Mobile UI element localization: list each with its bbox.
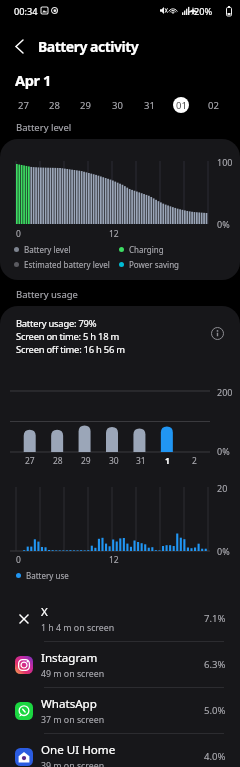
staticText: 20 — [217, 482, 228, 494]
staticText: Battery level — [16, 121, 72, 134]
button[interactable]: X — [0, 596, 240, 642]
staticText: 28 — [53, 455, 63, 467]
staticText: One UI Home — [41, 742, 116, 758]
staticText: 0% — [217, 218, 230, 230]
staticText: 0% — [217, 545, 230, 557]
staticText: 20% — [194, 5, 213, 18]
staticText: Apr 1 — [15, 70, 51, 90]
button[interactable]: 02 — [197, 95, 229, 115]
button[interactable]: One UI Home — [0, 734, 240, 767]
button[interactable]: Info — [208, 324, 226, 342]
button[interactable]: WhatsApp — [0, 688, 240, 734]
button[interactable]: Instagram — [0, 642, 240, 688]
staticText: Battery level — [24, 244, 71, 255]
staticText: 4.0% — [204, 750, 226, 763]
staticText: X — [41, 604, 48, 620]
button[interactable]: Back — [0, 30, 38, 62]
staticText: Battery use — [26, 570, 69, 581]
staticText: 29 — [80, 99, 91, 112]
staticText: 0 — [16, 554, 21, 566]
staticText: Battery usage — [16, 288, 78, 301]
staticText: Power saving — [129, 259, 180, 270]
staticText: 30 — [112, 99, 123, 112]
staticText: Estimated battery level — [24, 259, 110, 270]
button[interactable]: 27 — [7, 95, 38, 115]
staticText: Battery usage: 79% — [16, 317, 97, 330]
staticText: 01 — [176, 99, 187, 112]
staticText: 28 — [49, 99, 60, 112]
staticText: 31 — [136, 455, 146, 467]
staticText: 02 — [208, 99, 219, 112]
button[interactable]: 31 — [133, 95, 165, 115]
button[interactable]: 30 — [101, 95, 133, 115]
staticText: 200 — [217, 386, 233, 398]
staticText: 31 — [144, 99, 155, 112]
staticText: 1 h 4 m on screen — [41, 622, 115, 634]
staticText: 12 — [109, 228, 119, 240]
button[interactable]: 29 — [69, 95, 101, 115]
staticText: 27 — [25, 455, 35, 467]
staticText: Instagram — [41, 650, 98, 666]
button[interactable]: 28 — [38, 95, 69, 115]
staticText: Screen on time: 5 h 18 m — [16, 330, 119, 343]
staticText: 27 — [18, 99, 29, 112]
staticText: 37 m on screen — [41, 714, 105, 726]
staticText: 100 — [217, 156, 233, 168]
staticText: 5.0% — [204, 704, 226, 717]
staticText: 1 — [165, 455, 170, 467]
staticText: 0% — [217, 445, 230, 457]
staticText: 6.3% — [204, 658, 226, 671]
staticText: 7.1% — [204, 612, 226, 625]
staticText: 12 — [109, 554, 119, 566]
staticText: 00:34 — [14, 5, 38, 18]
staticText: 49 m on screen — [41, 668, 105, 680]
button[interactable]: 01 — [165, 95, 197, 115]
staticText: Screen off time: 16 h 56 m — [16, 343, 125, 356]
staticText: 39 m on screen — [41, 760, 105, 767]
staticText: Battery activity — [38, 37, 139, 56]
staticText: 30 — [109, 455, 119, 467]
staticText: 2 — [192, 455, 197, 467]
staticText: WhatsApp — [41, 696, 97, 712]
staticText: 29 — [81, 455, 91, 467]
staticText: Charging — [129, 244, 164, 255]
staticText: 0 — [16, 228, 21, 240]
